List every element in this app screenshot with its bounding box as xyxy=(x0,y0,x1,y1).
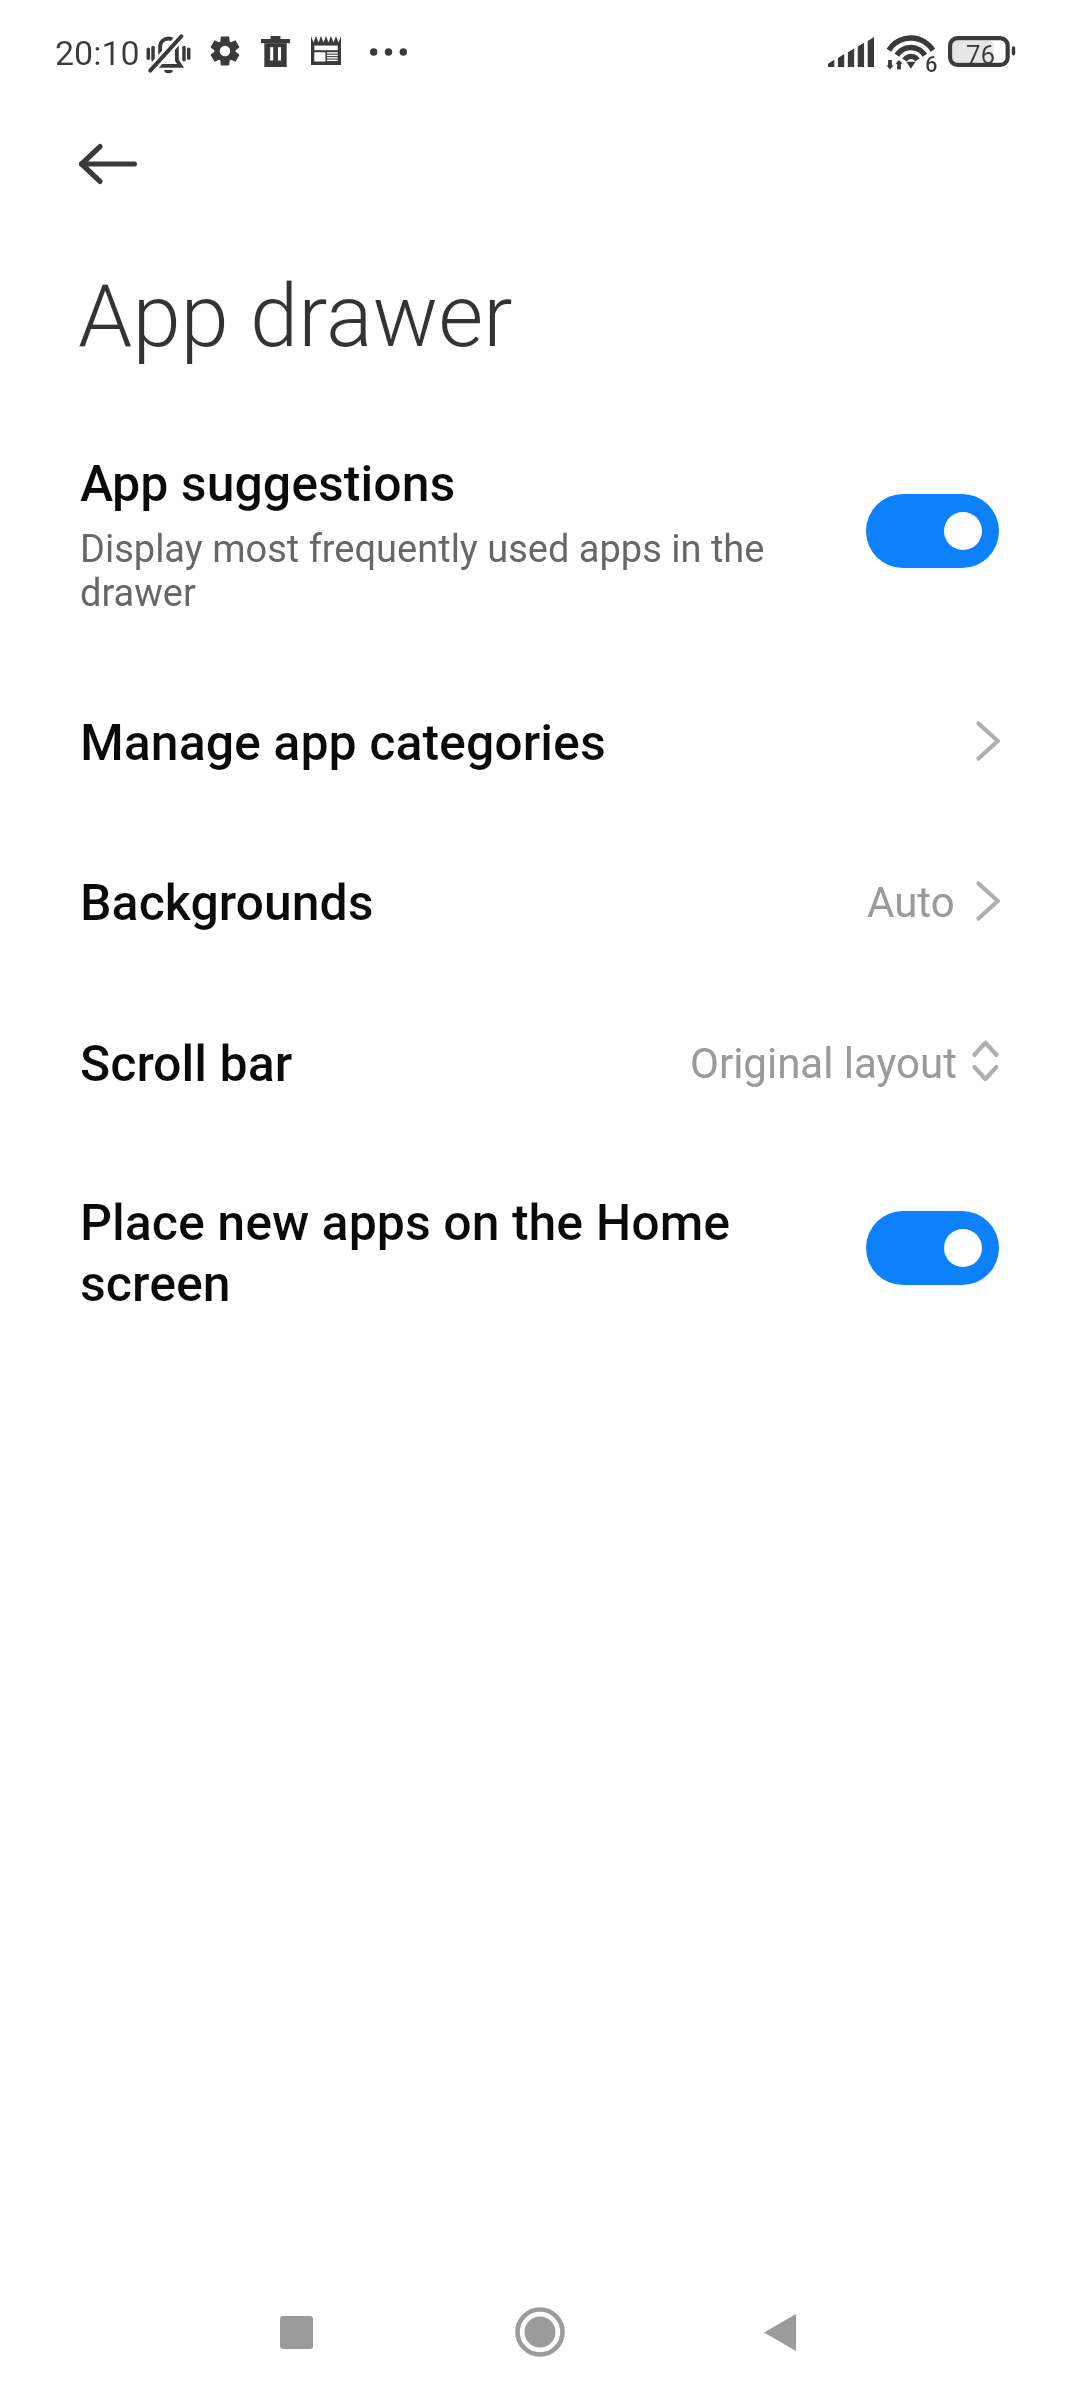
staticText: App drawer xyxy=(78,265,513,367)
button[interactable]: Scroll bar xyxy=(0,1000,1080,1160)
button[interactable]: Toggle xyxy=(866,494,999,568)
button[interactable]: Place new apps on the Home screen xyxy=(0,1160,1080,1380)
staticText: Manage app categories xyxy=(80,714,606,773)
staticText: 20:10 xyxy=(55,33,140,73)
staticText: Scroll bar xyxy=(80,1035,293,1094)
staticText: Backgrounds xyxy=(80,874,374,933)
button[interactable]: App suggestions xyxy=(0,420,1080,670)
staticText: 76 xyxy=(966,40,996,70)
staticText: 6 xyxy=(925,52,938,78)
button[interactable]: Manage app categories xyxy=(0,680,1080,840)
button[interactable]: Recents xyxy=(236,2272,356,2392)
staticText: Display most frequently used apps in the… xyxy=(80,527,765,615)
staticText: App suggestions xyxy=(80,455,456,514)
button[interactable]: Toggle xyxy=(866,1211,999,1285)
staticText: Auto xyxy=(867,878,955,927)
staticText: Place new apps on the Home screen xyxy=(80,1194,731,1313)
button[interactable]: Backgrounds xyxy=(0,840,1080,1000)
button[interactable]: Back xyxy=(54,110,162,218)
button[interactable]: Back xyxy=(720,2272,840,2392)
staticText: Original layout xyxy=(690,1039,957,1088)
button[interactable]: Home xyxy=(480,2272,600,2392)
